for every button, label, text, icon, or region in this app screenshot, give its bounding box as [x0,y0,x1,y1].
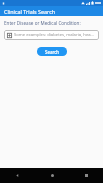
button[interactable]: Home [35,168,69,183]
staticText: Some examples: diabetes, malaria, headac… [14,32,96,38]
button[interactable]: Search [37,47,67,56]
button[interactable]: Recent apps [69,168,103,183]
staticText: Clinical Trials Search [4,8,56,15]
other: Condition [7,33,12,38]
staticText: Search [45,49,60,55]
button[interactable]: Back [0,168,35,183]
staticText: Enter Disease or Medical Condition: [4,20,81,26]
button[interactable]: Condition [4,30,99,40]
